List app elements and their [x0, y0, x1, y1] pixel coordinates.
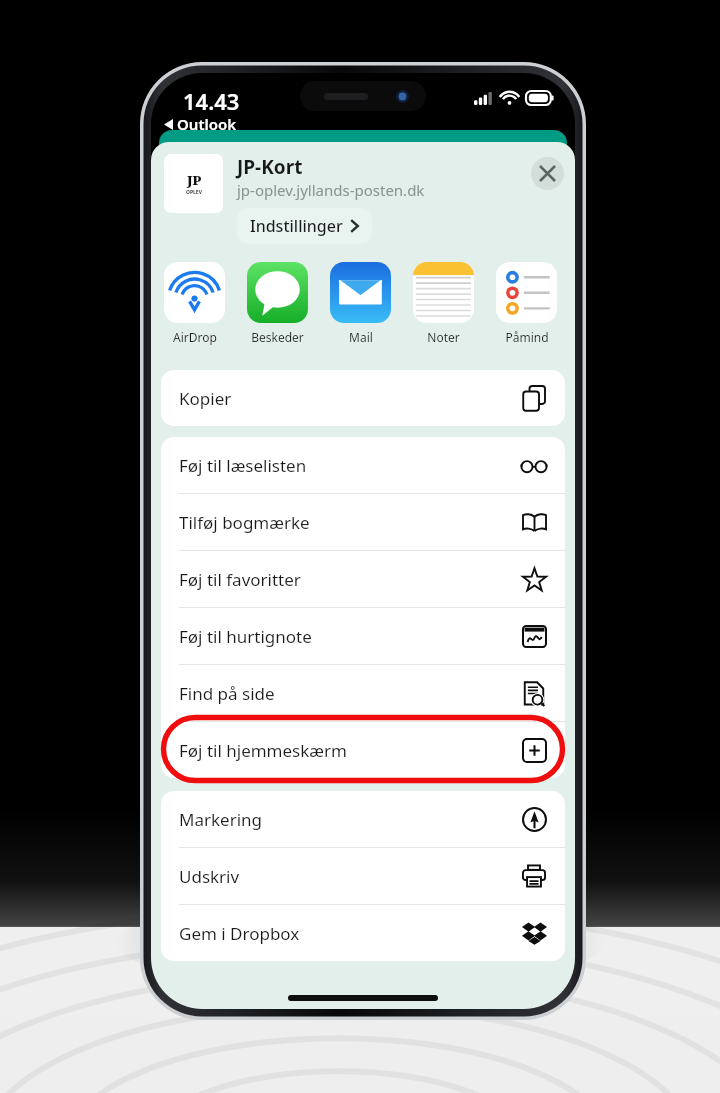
staticText: Tilføj bogmærke	[179, 511, 521, 534]
staticText: Udskriv	[179, 865, 521, 888]
staticText: 14.43	[183, 86, 240, 116]
button[interactable]: Føj til hurtignote	[161, 608, 565, 664]
staticText: Outlook	[177, 114, 237, 134]
staticText: OPLEV	[186, 189, 202, 196]
button[interactable]: Føj til hjemmeskærm	[161, 722, 565, 778]
staticText: JP-Kort	[237, 154, 303, 180]
staticText: Kopier	[179, 387, 521, 410]
staticText: Føj til hjemmeskærm	[179, 739, 521, 762]
button[interactable]: Føj til læselisten	[161, 437, 565, 493]
staticText: Gem i Dropbox	[179, 922, 521, 945]
staticText: Beskeder	[251, 329, 304, 345]
button[interactable]: Indstillinger	[237, 208, 372, 244]
button[interactable]: Find på side	[161, 665, 565, 721]
staticText: Indstillinger	[250, 215, 343, 237]
staticText: jp-oplev.jyllands-posten.dk	[237, 180, 425, 200]
staticText: Noter	[427, 329, 460, 345]
button[interactable]: Mail	[330, 262, 391, 345]
button[interactable]: Noter	[413, 262, 474, 345]
button[interactable]: Kopier	[161, 370, 565, 426]
staticText: Markering	[179, 808, 521, 831]
button[interactable]: Luk	[531, 157, 564, 190]
button[interactable]: Tilføj bogmærke	[161, 494, 565, 550]
staticText: Find på side	[179, 682, 521, 705]
button[interactable]: Gem i Dropbox	[161, 905, 565, 961]
staticText: AirDrop	[173, 329, 217, 345]
staticText: Føj til hurtignote	[179, 625, 521, 648]
button[interactable]: AirDrop	[164, 262, 225, 345]
button[interactable]: Markering	[161, 791, 565, 847]
staticText: Mail	[349, 329, 373, 345]
staticText: Føj til læselisten	[179, 454, 521, 477]
staticText: Påmind	[505, 329, 549, 345]
staticText: Føj til favoritter	[179, 568, 521, 591]
button[interactable]: Beskeder	[247, 262, 308, 345]
staticText: JP	[187, 171, 202, 189]
button[interactable]: Føj til favoritter	[161, 551, 565, 607]
button[interactable]: Udskriv	[161, 848, 565, 904]
button[interactable]: Påmind	[496, 262, 557, 345]
